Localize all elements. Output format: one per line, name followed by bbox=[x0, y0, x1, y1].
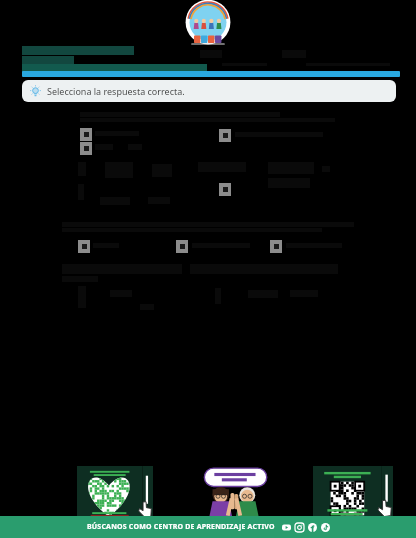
button[interactable]: YouTube bbox=[282, 523, 291, 532]
button[interactable]: Facebook bbox=[308, 523, 317, 532]
button[interactable]: Casilla de respuesta bbox=[219, 129, 231, 142]
staticText: Selecciona la respuesta correcta. bbox=[47, 85, 185, 97]
button[interactable]: Selecciona la respuesta correcta. bbox=[22, 80, 396, 102]
button[interactable]: BÚSCANOS COMO CENTRO DE APRENDIZAJE ACTI… bbox=[0, 516, 416, 538]
button[interactable]: TikTok bbox=[321, 523, 330, 532]
button[interactable]: Casilla de respuesta bbox=[270, 240, 282, 253]
button[interactable]: Casilla de respuesta bbox=[80, 142, 92, 155]
button[interactable]: Casilla de respuesta bbox=[219, 183, 231, 196]
button[interactable]: Escanea el código QR de videos bbox=[313, 466, 393, 520]
button[interactable]: Logo CEAA bbox=[180, 2, 236, 50]
button[interactable]: Casilla de respuesta bbox=[80, 128, 92, 141]
button[interactable]: Escanea el código QR del corazón bbox=[77, 466, 153, 520]
button[interactable]: Casilla de respuesta bbox=[78, 240, 90, 253]
button[interactable]: Casilla de respuesta bbox=[176, 240, 188, 253]
button[interactable]: Instagram bbox=[295, 523, 304, 532]
button[interactable]: Aprendiendo juntos bbox=[195, 466, 273, 520]
staticText: BÚSCANOS COMO CENTRO DE APRENDIZAJE ACTI… bbox=[87, 522, 275, 532]
